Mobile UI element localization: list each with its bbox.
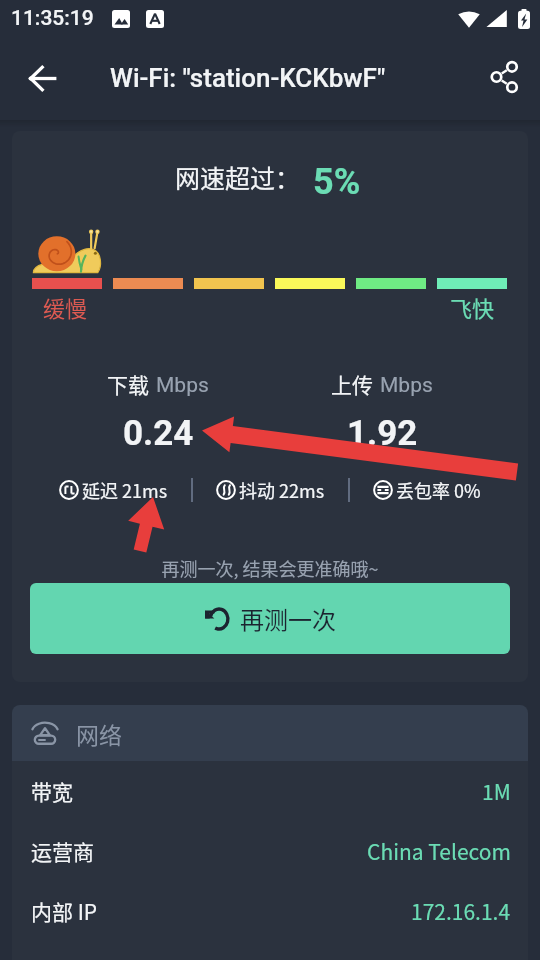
button[interactable]: 带宽 [31,761,511,821]
staticText: 缓慢 [43,291,88,323]
staticText: 再测一次, 结果会更准确哦~ [12,555,528,581]
button[interactable]: 再测一次 [30,583,510,654]
button[interactable]: 运营商 [31,821,511,881]
staticText: 1.92 [347,413,418,454]
staticText: 延迟 21ms [82,477,168,503]
staticText: 下载 [107,369,149,399]
button[interactable]: Back [18,54,66,102]
staticText: 抖动 22ms [239,477,325,503]
staticText: 飞快 [450,291,495,323]
staticText: 运营商 [31,836,94,866]
staticText: China Telecom [367,836,511,866]
staticText: Mbps [380,373,433,398]
staticText: 11:35:19 [11,6,94,31]
staticText: 网速超过： [175,159,301,195]
staticText: 5% [313,161,361,203]
staticText: 再测一次 [240,601,336,636]
staticText: 带宽 [31,776,73,806]
staticText: 上传 [331,369,373,399]
button[interactable]: Share [480,53,528,101]
staticText: 1M [482,776,511,806]
staticText: 0.24 [123,413,194,454]
staticText: 网络 [76,717,122,750]
button[interactable]: 内部 IP [31,881,511,941]
staticText: Wi-Fi: "station-KCKbwF" [110,63,386,93]
staticText: 内部 IP [31,896,98,926]
staticText: 丢包率 0% [396,477,481,503]
staticText: 172.16.1.4 [411,896,511,926]
staticText: Mbps [156,373,209,398]
